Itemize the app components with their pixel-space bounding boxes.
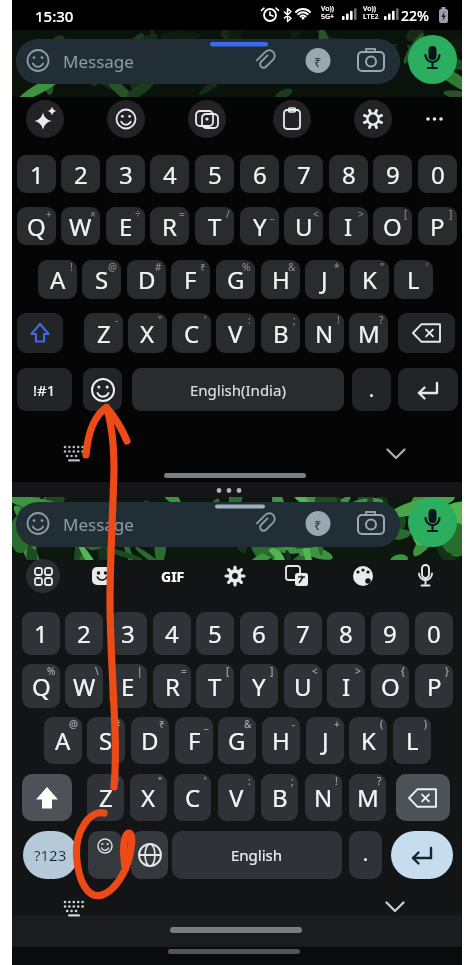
button[interactable]	[408, 35, 457, 84]
button[interactable]: T	[196, 664, 234, 708]
button[interactable]: M	[349, 313, 388, 353]
button[interactable]	[17, 313, 63, 353]
button[interactable]: P	[418, 207, 457, 245]
button[interactable]	[280, 559, 314, 593]
button[interactable]	[398, 368, 458, 411]
button[interactable]: 1	[22, 612, 60, 655]
button[interactable]: B	[261, 774, 298, 821]
button[interactable]: L	[393, 717, 431, 764]
button[interactable]	[26, 559, 60, 593]
button[interactable]: 5	[195, 155, 234, 193]
button[interactable]: Y	[240, 207, 279, 245]
button[interactable]: U	[284, 664, 322, 708]
button[interactable]: V	[216, 313, 255, 353]
button[interactable]: 1	[17, 155, 56, 193]
button[interactable]	[26, 100, 64, 138]
button[interactable]: W	[65, 664, 103, 708]
button[interactable]: ?123	[23, 831, 78, 879]
button[interactable]	[346, 559, 380, 593]
button[interactable]: X	[128, 313, 167, 353]
button[interactable]: 6	[240, 612, 278, 655]
button[interactable]: Message	[16, 502, 400, 547]
button[interactable]: E	[109, 664, 147, 708]
button[interactable]	[408, 559, 442, 593]
button[interactable]: R	[153, 664, 191, 708]
button[interactable]: English(India)	[132, 368, 344, 411]
button[interactable]: 0	[415, 612, 453, 655]
button[interactable]	[349, 831, 382, 879]
button[interactable]: Q	[17, 207, 56, 245]
button[interactable]	[218, 559, 252, 593]
button[interactable]: M	[349, 774, 386, 821]
button[interactable]	[131, 831, 168, 879]
button[interactable]: 8	[329, 155, 368, 193]
button[interactable]: J	[305, 260, 344, 299]
button[interactable]: S	[82, 260, 121, 299]
button[interactable]	[354, 100, 392, 138]
button[interactable]: H	[261, 260, 300, 299]
button[interactable]: W	[61, 207, 100, 245]
button[interactable]: !#1	[17, 368, 72, 411]
button[interactable]: N	[305, 313, 344, 353]
button[interactable]: 2	[65, 612, 103, 655]
button[interactable]	[396, 774, 450, 821]
button[interactable]: V	[218, 774, 255, 821]
button[interactable]: English	[172, 831, 342, 879]
button[interactable]: S	[87, 717, 125, 764]
button[interactable]: I	[329, 207, 368, 245]
button[interactable]: 8	[327, 612, 365, 655]
button[interactable]	[83, 368, 122, 411]
button[interactable]	[188, 100, 226, 138]
button[interactable]: GIF	[156, 559, 190, 593]
button[interactable]: Message	[16, 39, 400, 84]
button[interactable]: B	[261, 313, 300, 353]
button[interactable]: 9	[371, 612, 409, 655]
button[interactable]	[398, 313, 455, 353]
button[interactable]: 6	[240, 155, 279, 193]
button[interactable]	[107, 100, 145, 138]
button[interactable]	[408, 498, 457, 547]
button[interactable]: 3	[109, 612, 147, 655]
button[interactable]: T	[195, 207, 234, 245]
button[interactable]: 7	[284, 612, 322, 655]
button[interactable]: P	[415, 664, 453, 708]
button[interactable]: A	[38, 260, 77, 299]
button[interactable]: Q	[22, 664, 60, 708]
button[interactable]: Z	[87, 774, 124, 821]
button[interactable]: R	[150, 207, 189, 245]
button[interactable]: D	[131, 717, 169, 764]
button[interactable]: 4	[150, 155, 189, 193]
button[interactable]: Y	[240, 664, 278, 708]
button[interactable]	[22, 774, 72, 821]
button[interactable]: 5	[196, 612, 234, 655]
button[interactable]: J	[306, 717, 344, 764]
button[interactable]: C	[174, 774, 211, 821]
button[interactable]	[391, 831, 453, 879]
button[interactable]	[85, 559, 119, 593]
button[interactable]	[273, 100, 311, 138]
button[interactable]: D	[127, 260, 166, 299]
button[interactable]: 3	[106, 155, 145, 193]
button[interactable]: N	[305, 774, 342, 821]
button[interactable]: C	[172, 313, 211, 353]
button[interactable]: G	[216, 260, 255, 299]
button[interactable]: I	[327, 664, 365, 708]
button[interactable]: F	[171, 260, 210, 299]
button[interactable]: U	[284, 207, 323, 245]
button[interactable]: K	[350, 260, 389, 299]
button[interactable]	[352, 368, 391, 411]
button[interactable]: K	[349, 717, 387, 764]
button[interactable]: 4	[153, 612, 191, 655]
button[interactable]: Z	[84, 313, 123, 353]
button[interactable]: A	[44, 717, 82, 764]
button[interactable]: 2	[61, 155, 100, 193]
button[interactable]: 0	[418, 155, 457, 193]
button[interactable]: 9	[373, 155, 412, 193]
button[interactable]: 7	[284, 155, 323, 193]
button[interactable]: O	[371, 664, 409, 708]
button[interactable]: ,	[88, 831, 122, 879]
button[interactable]: X	[130, 774, 167, 821]
button[interactable]: E	[106, 207, 145, 245]
button[interactable]: O	[373, 207, 412, 245]
button[interactable]	[420, 105, 450, 133]
